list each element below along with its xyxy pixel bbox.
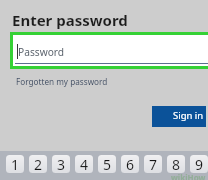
button[interactable]: 6 xyxy=(121,155,139,173)
staticText: 9 xyxy=(195,155,204,173)
button[interactable]: Password entry field xyxy=(10,32,208,69)
staticText: Password xyxy=(18,45,65,59)
staticText: 4 xyxy=(80,155,89,173)
button[interactable]: 9 xyxy=(190,155,208,173)
button[interactable]: Forgotten my password xyxy=(16,76,108,87)
button[interactable]: 3 xyxy=(52,155,70,173)
staticText: 2 xyxy=(34,155,43,173)
button[interactable]: 8 xyxy=(167,155,185,173)
button[interactable]: 7 xyxy=(144,155,162,173)
staticText: 1 xyxy=(11,155,20,173)
button[interactable]: 1 xyxy=(6,155,24,173)
staticText: wikiHow xyxy=(171,172,206,180)
staticText: 5 xyxy=(103,155,112,173)
button[interactable]: 5 xyxy=(98,155,116,173)
staticText: 8 xyxy=(172,155,181,173)
staticText: Enter password xyxy=(12,10,128,30)
button[interactable]: Sign in xyxy=(152,106,206,127)
staticText: Sign in xyxy=(173,109,204,122)
staticText: 3 xyxy=(57,155,66,173)
button[interactable]: 4 xyxy=(75,155,93,173)
button[interactable]: 2 xyxy=(29,155,47,173)
staticText: 6 xyxy=(126,155,135,173)
staticText: 7 xyxy=(149,155,158,173)
